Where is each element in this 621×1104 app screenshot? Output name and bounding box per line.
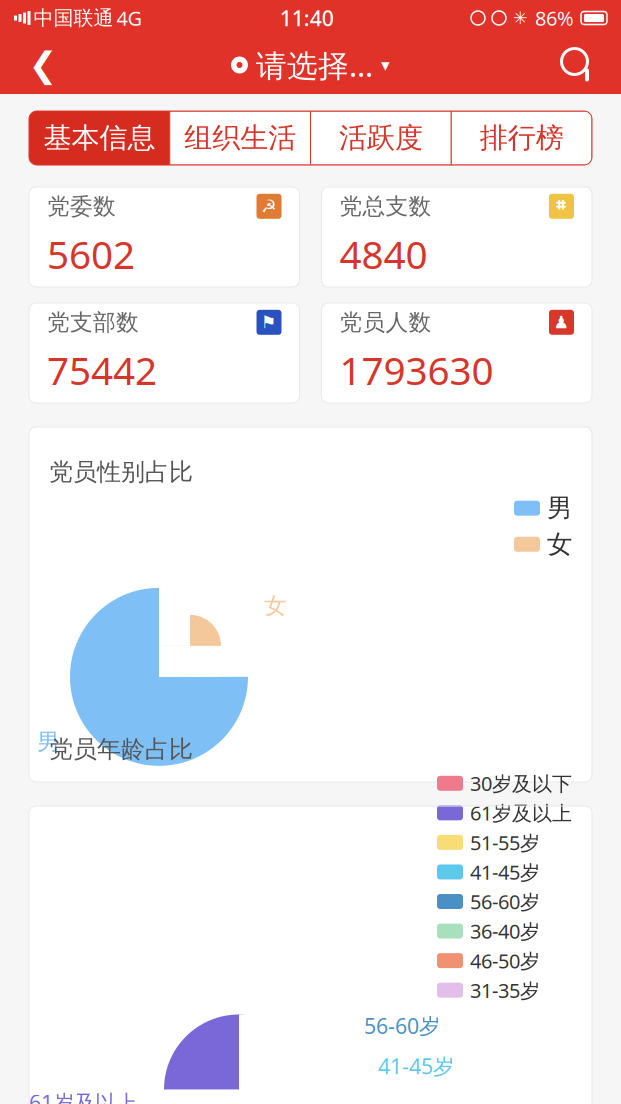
staticText: 男 bbox=[37, 728, 60, 756]
button[interactable]: 基本信息 bbox=[29, 111, 170, 165]
staticText: 女 bbox=[547, 529, 572, 560]
staticText: 31-35岁 bbox=[470, 977, 540, 1003]
staticText: ☭ bbox=[261, 196, 277, 216]
staticText: 请选择... bbox=[256, 45, 373, 85]
staticText: 36-40岁 bbox=[470, 918, 540, 944]
staticText: 女 bbox=[264, 592, 287, 620]
button[interactable]: 党员人数 bbox=[321, 303, 592, 403]
button[interactable]: 党委数 bbox=[29, 187, 299, 287]
staticText: 56-60岁 bbox=[364, 1011, 440, 1040]
staticText: 11:40 bbox=[280, 4, 334, 32]
staticText: 51-55岁 bbox=[470, 829, 540, 856]
staticText: 46-50岁 bbox=[470, 947, 540, 974]
staticText: 中国联通 bbox=[33, 6, 113, 30]
button[interactable]: Back bbox=[14, 36, 72, 94]
staticText: 75442 bbox=[47, 344, 157, 395]
staticText: 党委数 bbox=[47, 192, 116, 220]
staticText: 4840 bbox=[339, 228, 427, 279]
button[interactable]: 党支部数 bbox=[29, 303, 299, 403]
staticText: 1793630 bbox=[339, 344, 493, 395]
staticText: 党员性别占比 bbox=[49, 457, 193, 487]
staticText: 30岁及以下 bbox=[470, 770, 572, 797]
button[interactable]: 党总支数 bbox=[321, 187, 592, 287]
staticText: 组织生活 bbox=[184, 121, 296, 155]
button[interactable]: 请选择... bbox=[221, 36, 400, 94]
staticText: 党总支数 bbox=[339, 192, 431, 220]
staticText: 男 bbox=[547, 493, 572, 524]
staticText: 活跃度 bbox=[339, 121, 423, 155]
staticText: 党员人数 bbox=[339, 308, 431, 336]
staticText: ✳ bbox=[513, 8, 528, 28]
staticText: ▾ bbox=[381, 55, 390, 75]
staticText: 党员年龄占比 bbox=[49, 734, 193, 764]
staticText: 56-60岁 bbox=[470, 888, 540, 915]
staticText: 61岁及以上 bbox=[29, 1088, 137, 1104]
button[interactable]: 组织生活 bbox=[170, 111, 311, 165]
staticText: ⚑ bbox=[261, 312, 277, 332]
staticText: 61岁及以上 bbox=[470, 800, 572, 826]
staticText: 41-45岁 bbox=[470, 859, 540, 885]
staticText: 基本信息 bbox=[43, 121, 155, 155]
button[interactable]: 排行榜 bbox=[451, 111, 592, 165]
button[interactable]: Search bbox=[549, 36, 607, 94]
staticText: 86% bbox=[535, 5, 574, 31]
button[interactable]: 活跃度 bbox=[310, 111, 451, 165]
staticText: ❮ bbox=[28, 45, 57, 85]
staticText: 5602 bbox=[47, 228, 135, 279]
staticText: 4G bbox=[116, 5, 142, 31]
staticText: 党支部数 bbox=[47, 308, 139, 336]
staticText: 41-45岁 bbox=[378, 1052, 454, 1080]
staticText: ♟ bbox=[553, 312, 569, 332]
staticText: ⌗ bbox=[556, 196, 567, 217]
staticText: 排行榜 bbox=[480, 121, 564, 155]
